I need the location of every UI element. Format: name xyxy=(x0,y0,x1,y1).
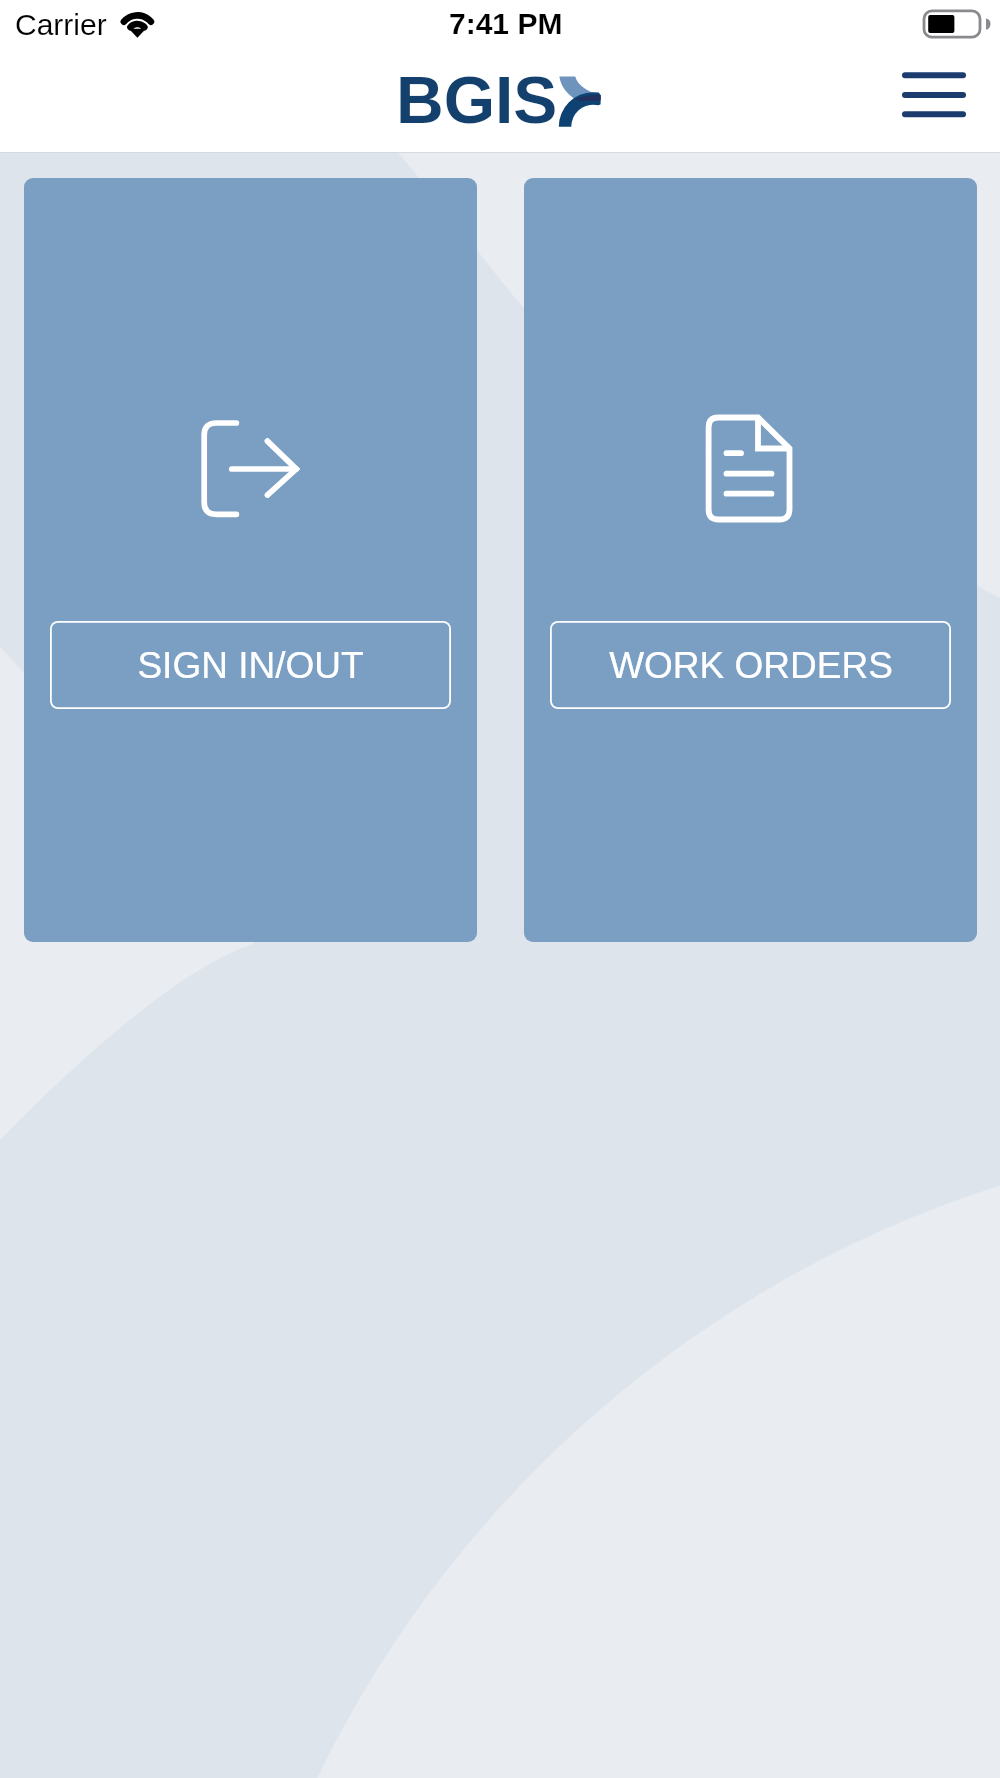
staticText: BGIS xyxy=(396,63,558,137)
button[interactable]: Open navigation menu xyxy=(880,60,990,153)
button[interactable]: SIGN IN/OUT xyxy=(24,178,477,942)
button[interactable]: BGIS home xyxy=(399,59,609,152)
button[interactable]: WORK ORDERS xyxy=(524,178,977,942)
staticText: Carrier xyxy=(15,8,107,42)
button[interactable]: SIGN IN/OUT xyxy=(50,621,451,709)
button[interactable]: WORK ORDERS xyxy=(550,621,951,709)
staticText: WORK ORDERS xyxy=(609,645,893,686)
staticText: 7:41 PM xyxy=(449,7,563,41)
staticText: SIGN IN/OUT xyxy=(137,645,364,686)
